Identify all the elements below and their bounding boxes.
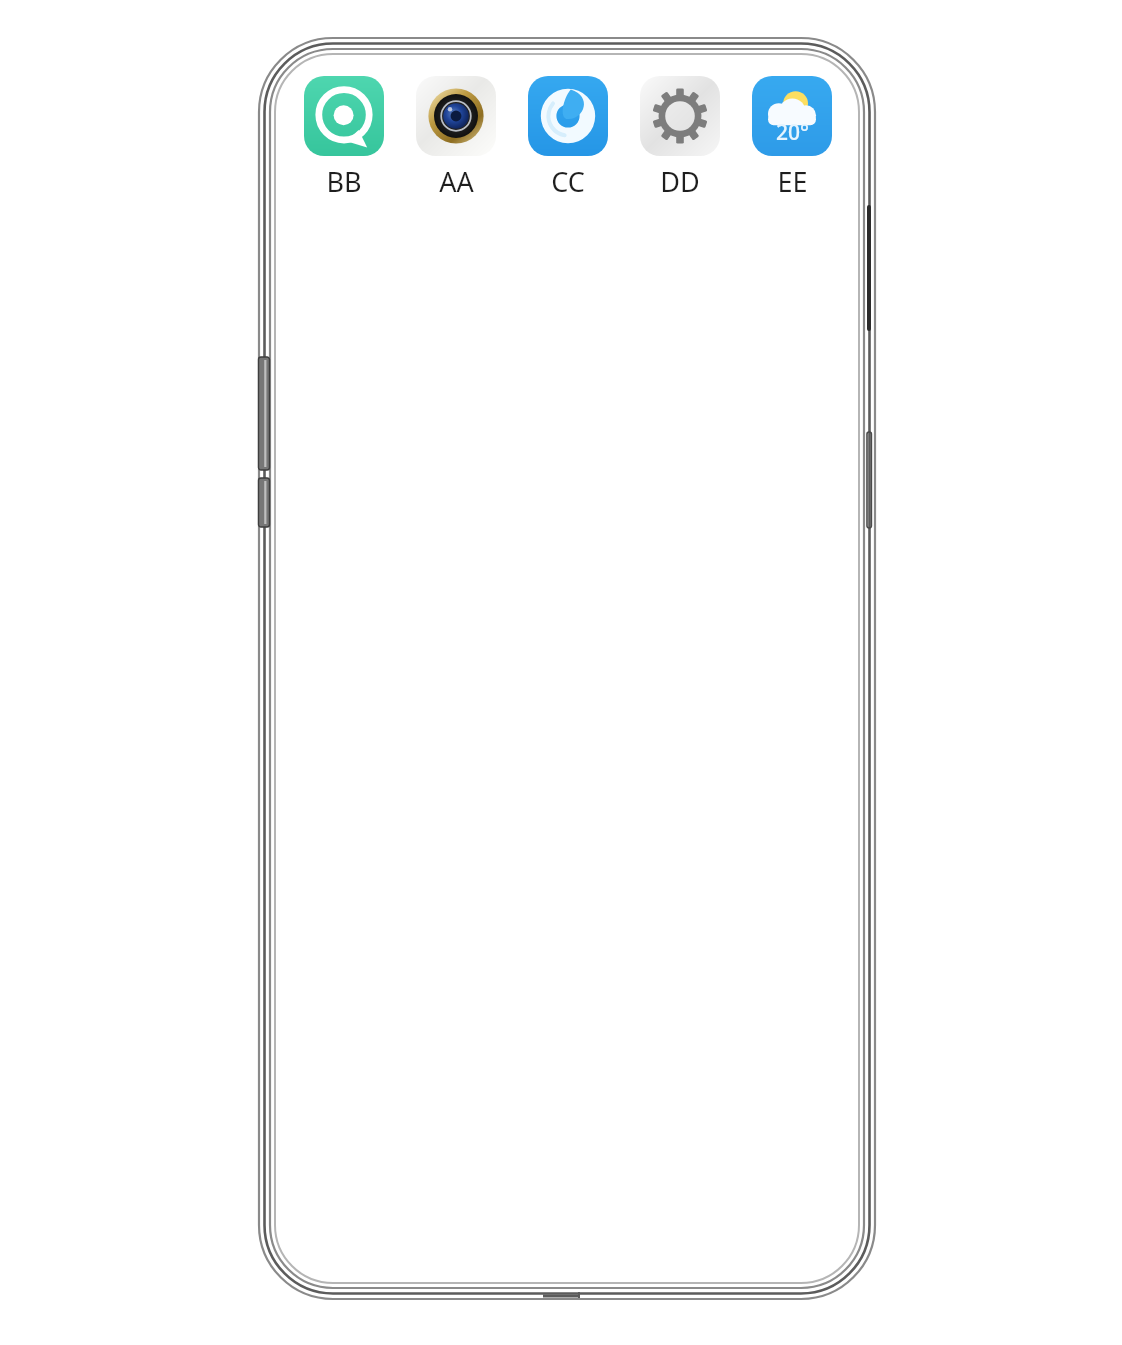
button[interactable]: DD bbox=[624, 70, 736, 200]
other: DD bbox=[640, 76, 720, 156]
staticText: DD bbox=[660, 163, 700, 200]
other: EE bbox=[752, 76, 832, 156]
staticText: CC bbox=[551, 163, 585, 200]
button[interactable]: CC bbox=[512, 70, 624, 200]
other: AA bbox=[416, 76, 496, 156]
staticText: EE bbox=[777, 163, 808, 200]
button[interactable]: BB bbox=[288, 70, 400, 200]
other: BB bbox=[304, 76, 384, 156]
other: CC bbox=[528, 76, 608, 156]
button[interactable]: EE bbox=[736, 70, 848, 200]
staticText: 20° bbox=[776, 118, 809, 147]
button[interactable]: AA bbox=[400, 70, 512, 200]
staticText: BB bbox=[326, 163, 362, 200]
staticText: AA bbox=[439, 163, 474, 200]
